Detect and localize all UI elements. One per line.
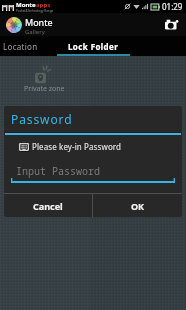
staticText: Pocket&Technology Range xyxy=(16,9,54,13)
staticText: 01:29 xyxy=(162,1,183,12)
button[interactable]: Camera xyxy=(162,15,182,35)
staticText: Lock Folder xyxy=(68,41,119,52)
staticText: apps xyxy=(36,1,51,9)
button[interactable]: Location xyxy=(0,36,40,56)
button[interactable]: Lock Folder xyxy=(57,36,130,56)
button[interactable]: Cancel xyxy=(4,194,92,217)
staticText: Gallery xyxy=(25,28,45,36)
staticText: Monte xyxy=(25,16,53,28)
staticText: Location xyxy=(3,41,38,52)
button[interactable]: Private zone xyxy=(21,63,67,94)
staticText: Please key-in Password xyxy=(32,141,122,152)
button[interactable]: Monte xyxy=(6,15,53,35)
staticText: Monte xyxy=(16,1,36,9)
staticText: Cancel xyxy=(33,200,63,212)
button[interactable]: OK xyxy=(93,194,182,217)
staticText: Password xyxy=(11,111,73,127)
staticText: Private zone xyxy=(24,84,65,94)
staticText: Input Password xyxy=(16,164,100,178)
staticText: OK xyxy=(131,200,145,212)
